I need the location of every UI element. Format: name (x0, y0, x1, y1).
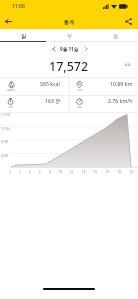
button[interactable]: 칼로리 (0, 78, 69, 95)
staticText: 6 (39, 170, 41, 174)
button[interactable]: 거리 (69, 78, 138, 95)
staticText: 일 (21, 33, 26, 39)
staticText: 18 (106, 170, 110, 174)
staticText: 월 (113, 33, 118, 39)
staticText: 2.76 km/h (108, 97, 133, 104)
staticText: 통계 (64, 19, 74, 25)
staticText: 14 (82, 170, 86, 174)
staticText: 10.89 km (110, 80, 133, 87)
button[interactable]: 일 (0, 29, 46, 42)
staticText: 거리 (77, 88, 83, 91)
button[interactable]: Previous day (48, 43, 59, 54)
staticText: 12 (70, 170, 74, 174)
staticText: 10 (59, 170, 63, 174)
staticText: 8,789 (1, 140, 9, 144)
staticText: 20 (118, 170, 122, 174)
staticText: 9월 11일 (60, 46, 79, 52)
button[interactable]: Share (121, 14, 136, 29)
staticText: 163 분 (45, 97, 61, 104)
button[interactable]: 시간 (0, 95, 69, 112)
staticText: 시간 (8, 105, 14, 108)
staticText: 주 (67, 33, 72, 39)
staticText: 4,395 (1, 154, 9, 158)
button[interactable]: 월 (92, 29, 138, 42)
staticText: 8 (49, 170, 51, 174)
staticText: 16 (94, 170, 98, 174)
button[interactable]: 속도 (69, 95, 138, 112)
staticText: 22 (130, 170, 134, 174)
staticText: 칼로리 (7, 88, 15, 91)
staticText: 걸음 (124, 63, 132, 68)
staticText: 2 (19, 170, 21, 174)
staticText: 17,578 (1, 113, 10, 117)
button[interactable]: 주 (46, 29, 92, 42)
staticText: 0 (9, 170, 11, 174)
staticText: 속도 (77, 105, 83, 108)
staticText: 17,572 (49, 58, 89, 73)
button[interactable]: Back (1, 14, 16, 29)
staticText: 13,184 (1, 127, 10, 131)
staticText: 4 (29, 170, 31, 174)
staticText: 11:06 (12, 3, 25, 10)
button[interactable]: Next day (80, 43, 91, 54)
staticText: 585 kcal (40, 80, 60, 87)
